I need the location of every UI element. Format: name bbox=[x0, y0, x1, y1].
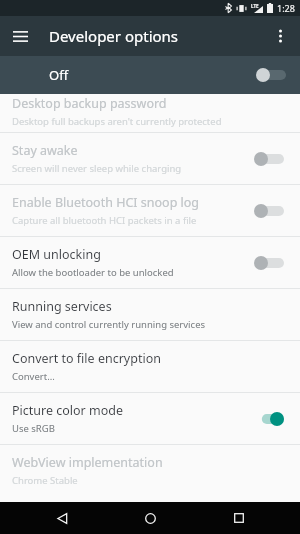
button[interactable]: Enable Bluetooth HCI snoop log toggle bbox=[250, 200, 288, 222]
button[interactable]: Recent apps bbox=[212, 502, 266, 534]
staticText: LTE bbox=[251, 3, 259, 9]
staticText: View and control currently running servi… bbox=[12, 318, 206, 331]
button[interactable]: OEM unlocking bbox=[0, 237, 300, 288]
button[interactable]: Enable Bluetooth HCI snoop log bbox=[0, 185, 300, 236]
staticText: 1:28 bbox=[277, 2, 295, 14]
button[interactable]: OEM unlocking toggle bbox=[250, 252, 288, 274]
staticText: Desktop full backups aren't currently pr… bbox=[12, 115, 222, 128]
staticText: Desktop backup password bbox=[12, 95, 167, 112]
button[interactable]: Running services bbox=[0, 289, 300, 340]
button[interactable]: Picture color mode bbox=[0, 393, 300, 444]
staticText: Use sRGB bbox=[12, 422, 55, 435]
staticText: Screen will never sleep while charging bbox=[12, 162, 182, 175]
button[interactable]: Picture color mode toggle bbox=[250, 408, 288, 430]
button[interactable]: WebView implementation bbox=[0, 445, 300, 496]
button[interactable]: Convert to file encryption bbox=[0, 341, 300, 392]
staticText: Chrome Stable bbox=[12, 474, 78, 487]
staticText: WebView implementation bbox=[12, 454, 163, 471]
staticText: Off bbox=[49, 66, 69, 84]
button[interactable]: Desktop backup password bbox=[0, 94, 300, 132]
staticText: Stay awake bbox=[12, 142, 78, 159]
button[interactable]: Off bbox=[0, 56, 300, 94]
staticText: Allow the bootloader to be unlocked bbox=[12, 266, 174, 279]
button[interactable]: More options bbox=[260, 16, 300, 56]
staticText: Enable Bluetooth HCI snoop log bbox=[12, 194, 200, 211]
button[interactable]: Stay awake bbox=[0, 133, 300, 184]
staticText: Convert... bbox=[12, 370, 55, 383]
button[interactable]: Back bbox=[35, 502, 89, 534]
button[interactable]: Stay awake toggle bbox=[250, 148, 288, 170]
staticText: Picture color mode bbox=[12, 402, 123, 419]
button[interactable]: Home bbox=[123, 502, 177, 534]
staticText: Running services bbox=[12, 298, 112, 315]
staticText: OEM unlocking bbox=[12, 246, 101, 263]
button[interactable]: Open navigation menu bbox=[0, 16, 40, 56]
staticText: Developer options bbox=[49, 26, 179, 46]
staticText: Capture all bluetooth HCI packets in a f… bbox=[12, 214, 197, 227]
staticText: Convert to file encryption bbox=[12, 350, 161, 367]
